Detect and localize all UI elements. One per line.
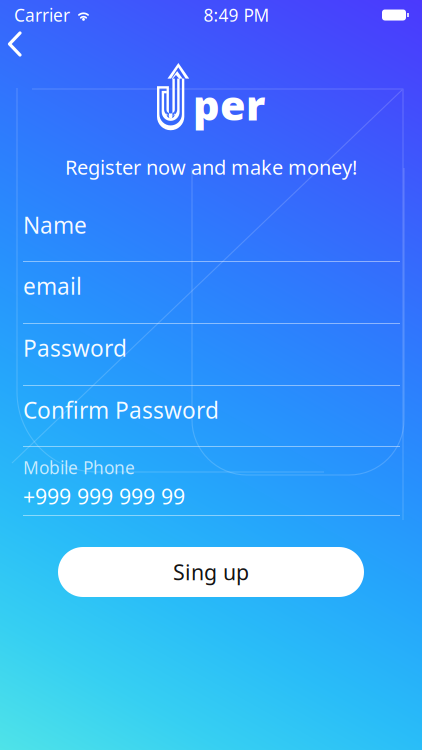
staticText: Confirm Password (23, 395, 219, 425)
staticText: Mobile Phone (23, 456, 135, 479)
staticText: Sing up (173, 558, 249, 586)
staticText: per (193, 77, 265, 132)
staticText: Carrier (14, 3, 70, 26)
staticText: +999 999 999 99 (23, 482, 185, 510)
button[interactable]: Mobile Phone (23, 447, 400, 516)
staticText: Name (23, 210, 87, 240)
button[interactable]: Back (0, 25, 37, 63)
button[interactable]: Sing up (58, 547, 364, 597)
button[interactable]: email (23, 262, 400, 324)
button[interactable]: Name (23, 201, 400, 262)
staticText: 8:49 PM (203, 3, 269, 26)
staticText: email (23, 271, 82, 301)
staticText: Register now and make money! (65, 154, 357, 180)
staticText: Password (23, 333, 127, 363)
button[interactable]: Password (23, 324, 400, 386)
button[interactable]: Confirm Password (23, 386, 400, 447)
